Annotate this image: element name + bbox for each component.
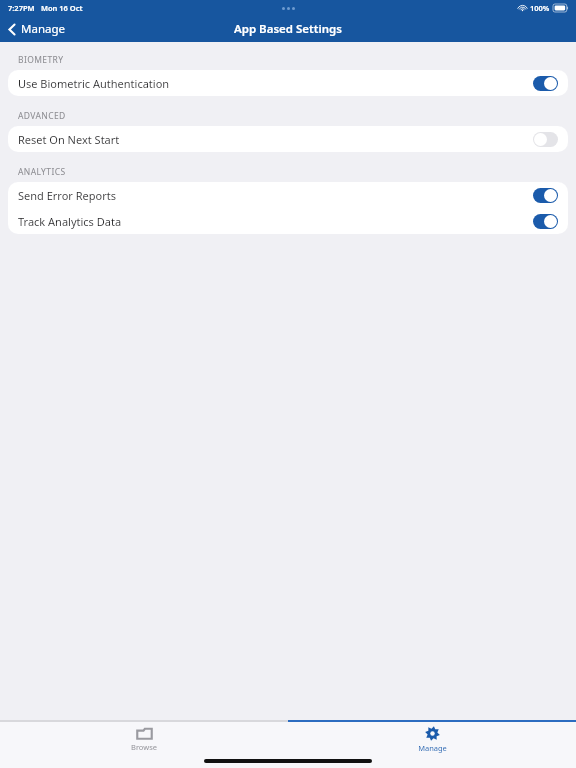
button[interactable]: Toggle on xyxy=(533,188,558,203)
button[interactable]: Toggle off xyxy=(533,132,558,147)
button[interactable]: Manage xyxy=(0,17,77,41)
staticText: ADVANCED xyxy=(18,110,66,122)
staticText: ANALYTICS xyxy=(18,166,66,178)
staticText: Send Error Reports xyxy=(18,188,116,203)
button[interactable]: Use Biometric Authentication xyxy=(8,70,568,96)
staticText: Track Analytics Data xyxy=(18,214,122,229)
button[interactable]: Track Analytics Data xyxy=(8,208,568,234)
staticText: Manage xyxy=(21,21,65,37)
button[interactable]: Manage xyxy=(288,722,576,756)
button[interactable]: Send Error Reports xyxy=(8,182,568,208)
staticText: 7:27PM xyxy=(8,3,35,13)
staticText: Reset On Next Start xyxy=(18,132,120,147)
staticText: Manage xyxy=(418,743,447,753)
staticText: 100% xyxy=(530,3,550,13)
staticText: BIOMETRY xyxy=(18,54,64,66)
button[interactable]: Toggle on xyxy=(533,76,558,91)
button[interactable]: Browse xyxy=(0,722,288,756)
staticText: Browse xyxy=(131,742,157,752)
staticText: App Based Settings xyxy=(234,21,342,37)
staticText: Mon 16 Oct xyxy=(41,3,83,13)
button[interactable]: Reset On Next Start xyxy=(8,126,568,152)
button[interactable]: Toggle on xyxy=(533,214,558,229)
staticText: Use Biometric Authentication xyxy=(18,76,170,91)
